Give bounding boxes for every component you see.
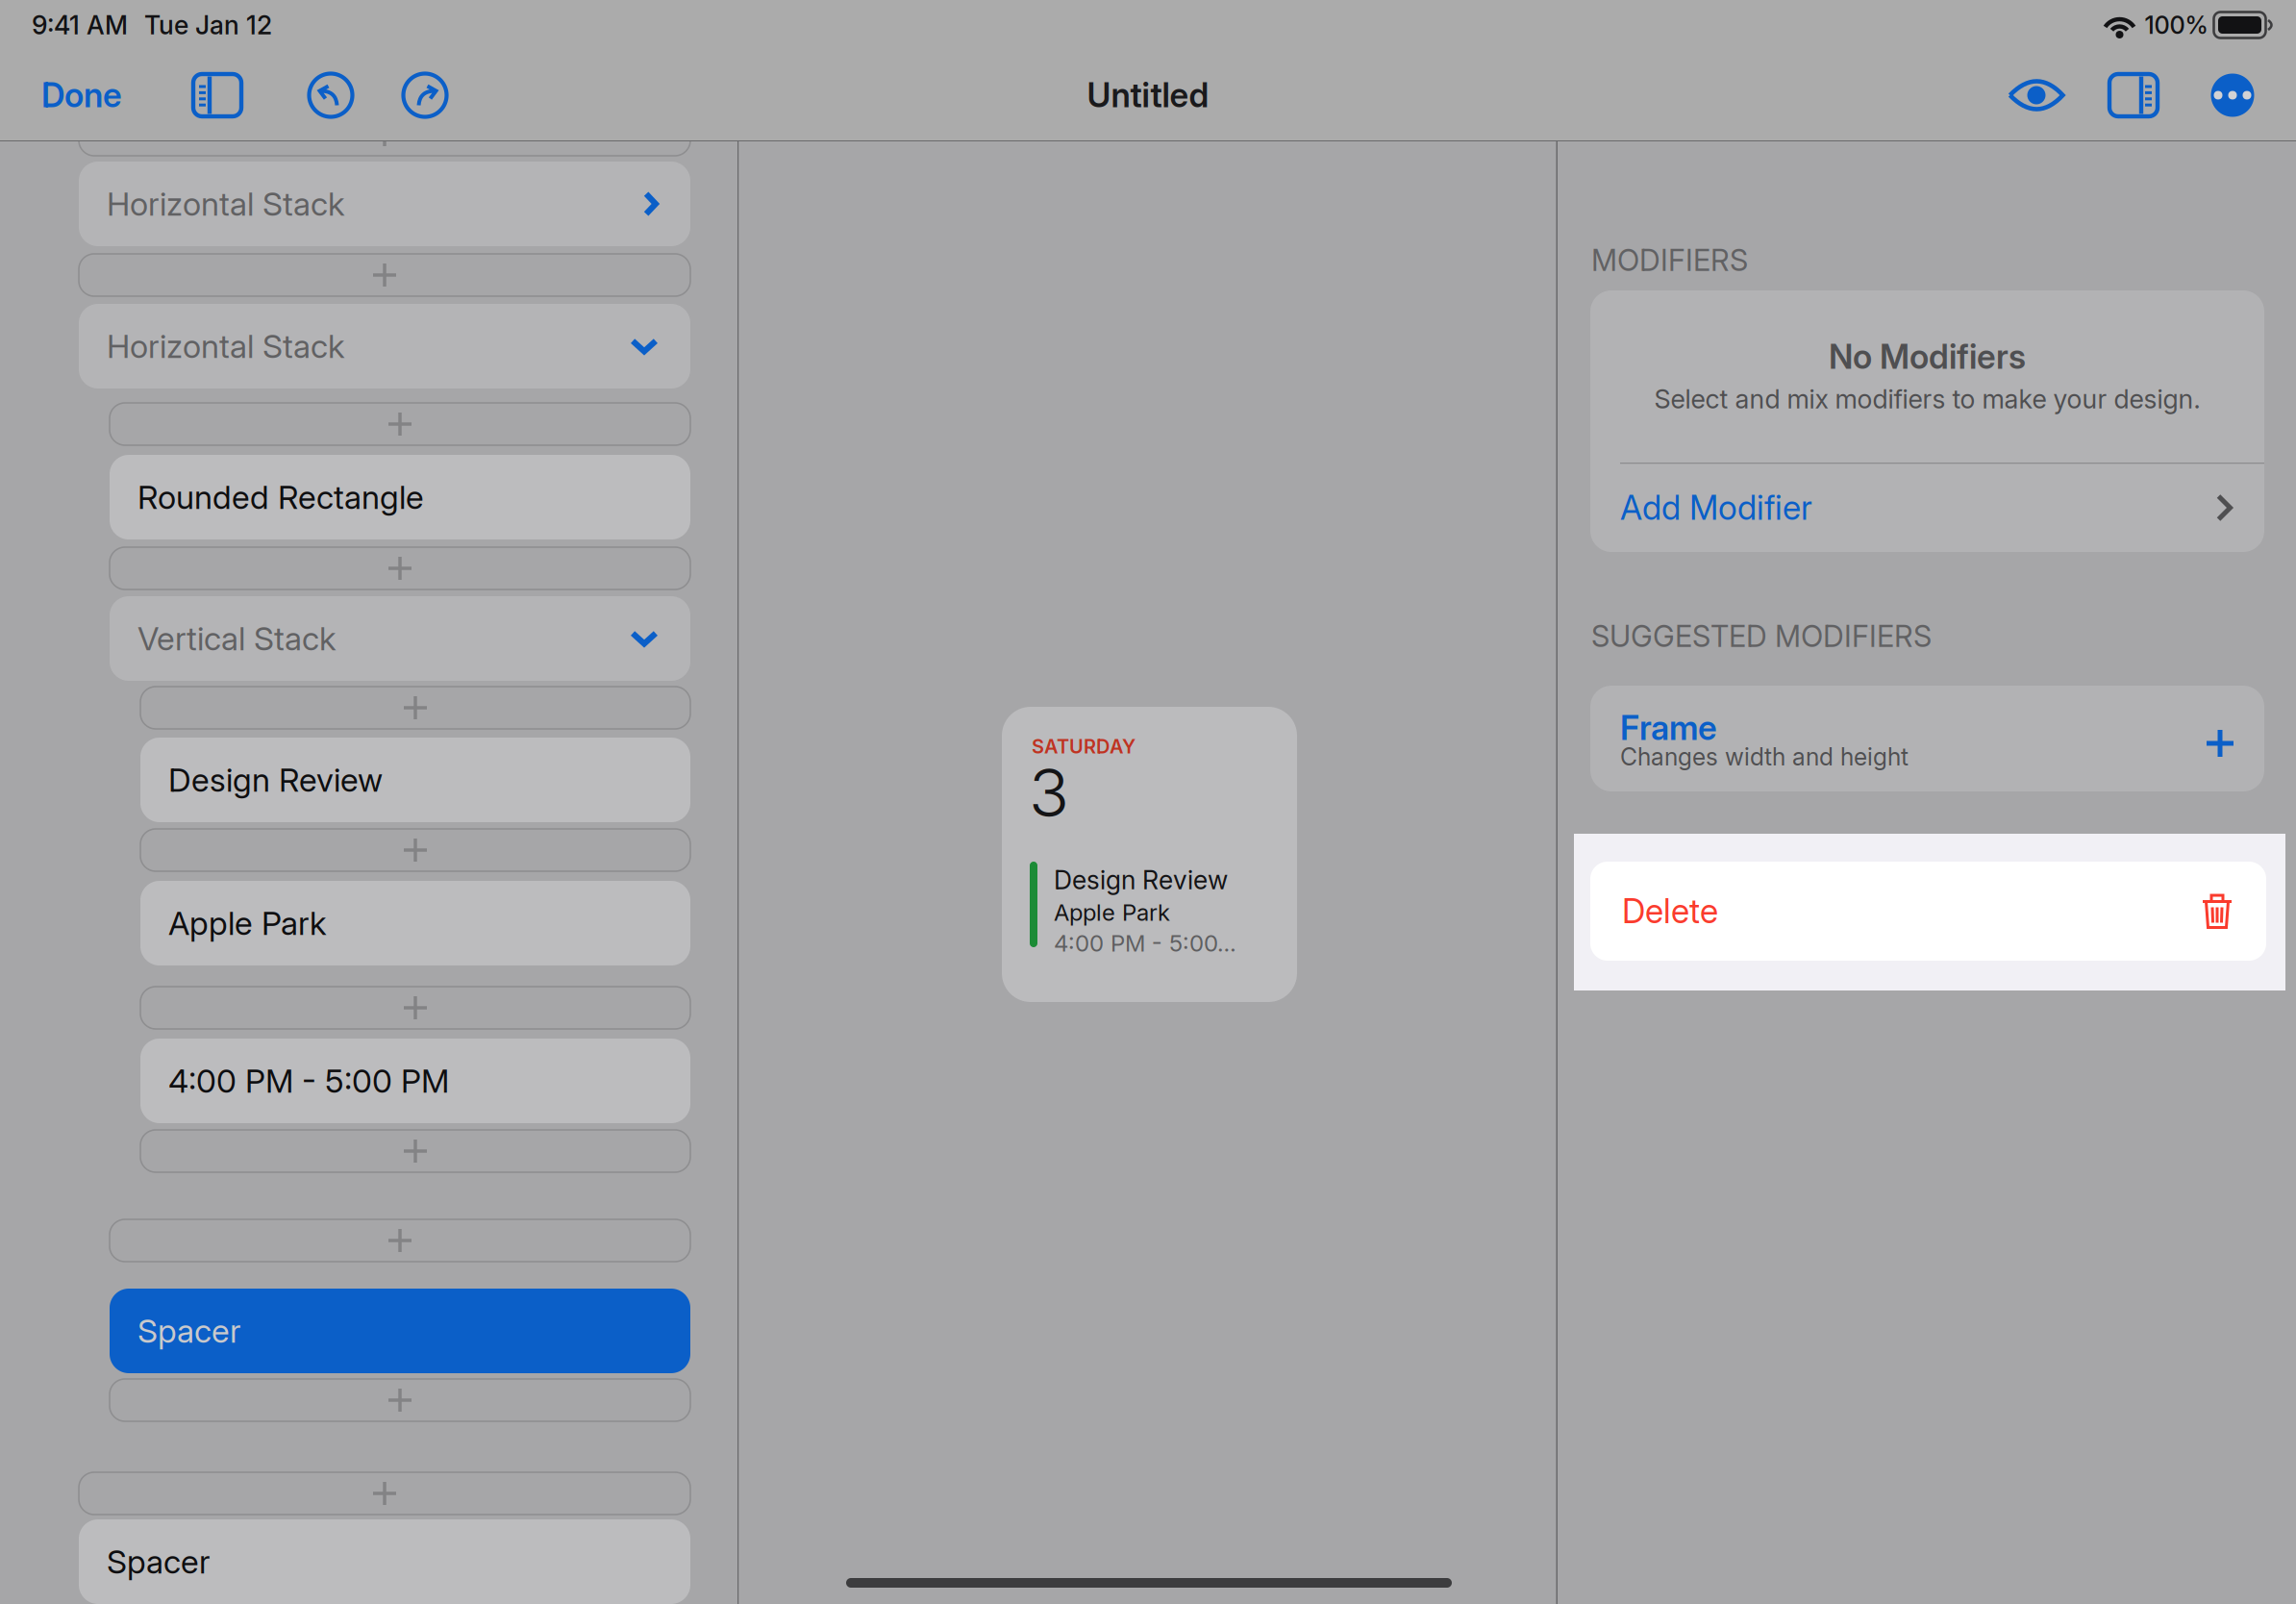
- button[interactable]: Insert: [110, 1219, 690, 1262]
- button[interactable]: Add Modifier: [1590, 464, 2264, 552]
- staticText: 4:00 PM - 5:00…: [1054, 929, 1236, 957]
- button[interactable]: Insert: [79, 1472, 690, 1515]
- staticText: 9:41 AM: [32, 10, 128, 41]
- button[interactable]: Rounded Rectangle: [110, 455, 690, 539]
- staticText: Horizontal Stack: [107, 327, 345, 366]
- staticText: Rounded Rectangle: [137, 478, 424, 517]
- button[interactable]: Delete: [1590, 862, 2266, 961]
- button[interactable]: Preview: [2000, 61, 2073, 130]
- button[interactable]: Spacer: [79, 1519, 690, 1604]
- staticText: SUGGESTED MODIFIERS: [1591, 618, 1932, 654]
- staticText: Spacer: [137, 1311, 241, 1351]
- button[interactable]: Insert: [140, 829, 690, 871]
- button[interactable]: Apple Park: [140, 881, 690, 965]
- button[interactable]: Horizontal Stack: [79, 162, 690, 246]
- staticText: Changes width and height: [1620, 742, 1909, 771]
- button[interactable]: Horizontal Stack: [79, 304, 690, 388]
- button[interactable]: Frame: [1590, 686, 2264, 791]
- button[interactable]: Design Review: [140, 738, 690, 822]
- staticText: Done: [41, 75, 122, 115]
- staticText: No Modifiers: [1829, 337, 2026, 377]
- staticText: Design Review: [168, 760, 383, 799]
- button[interactable]: More: [2198, 61, 2267, 130]
- staticText: Delete: [1622, 891, 1718, 931]
- button[interactable]: Insert: [140, 987, 690, 1029]
- staticText: Untitled: [1087, 75, 1209, 115]
- button[interactable]: 4:00 PM - 5:00 PM: [140, 1039, 690, 1123]
- staticText: MODIFIERS: [1591, 242, 1748, 278]
- button[interactable]: Insert: [140, 1130, 690, 1172]
- button[interactable]: Done: [41, 61, 137, 130]
- staticText: Select and mix modifiers to make your de…: [1654, 383, 2200, 415]
- staticText: Apple Park: [1054, 898, 1170, 926]
- staticText: Vertical Stack: [137, 619, 337, 658]
- staticText: Design Review: [1054, 865, 1228, 896]
- staticText: 4:00 PM - 5:00 PM: [168, 1061, 449, 1100]
- staticText: Spacer: [107, 1542, 211, 1581]
- staticText: Apple Park: [168, 904, 327, 943]
- button[interactable]: Insert: [110, 403, 690, 445]
- staticText: Add Modifier: [1620, 488, 1812, 528]
- button[interactable]: Insert: [140, 687, 690, 729]
- button[interactable]: Library: [181, 61, 254, 130]
- staticText: Tue Jan 12: [144, 10, 272, 41]
- staticText: 3: [1029, 752, 1069, 833]
- button[interactable]: Insert: [110, 1379, 690, 1421]
- button[interactable]: Insert: [79, 254, 690, 296]
- button[interactable]: Insert: [79, 113, 690, 156]
- button[interactable]: Inspector: [2097, 61, 2170, 130]
- button[interactable]: Vertical Stack: [110, 596, 690, 681]
- staticText: Horizontal Stack: [107, 184, 345, 223]
- staticText: 100%: [2145, 10, 2208, 40]
- button[interactable]: Undo: [296, 61, 365, 130]
- button[interactable]: Spacer: [110, 1289, 690, 1373]
- button[interactable]: Redo: [390, 61, 460, 130]
- staticText: SATURDAY: [1032, 735, 1136, 758]
- staticText: Frame: [1620, 708, 1717, 748]
- button[interactable]: Insert: [110, 547, 690, 589]
